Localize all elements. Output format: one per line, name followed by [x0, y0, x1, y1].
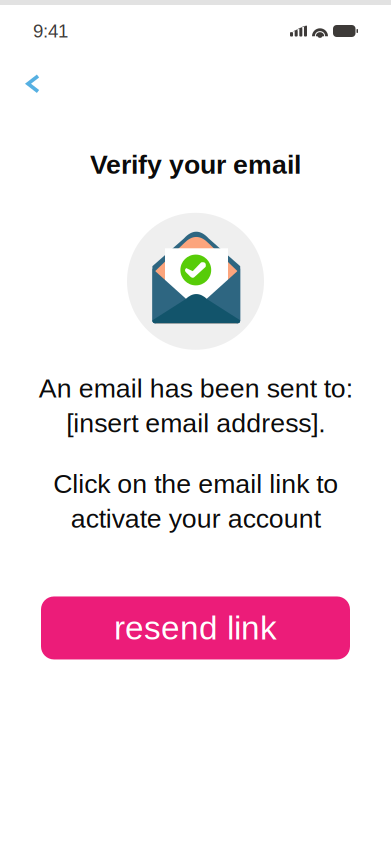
- button[interactable]: Back: [0, 57, 62, 111]
- staticText: An email has been sent to: [insert email…: [38, 373, 352, 438]
- staticText: Verify your email: [90, 149, 301, 179]
- button[interactable]: resend link: [41, 596, 350, 659]
- staticText: Click on the email link to activate your…: [53, 469, 338, 533]
- staticText: 9:41: [33, 21, 68, 41]
- staticText: resend link: [114, 609, 277, 646]
